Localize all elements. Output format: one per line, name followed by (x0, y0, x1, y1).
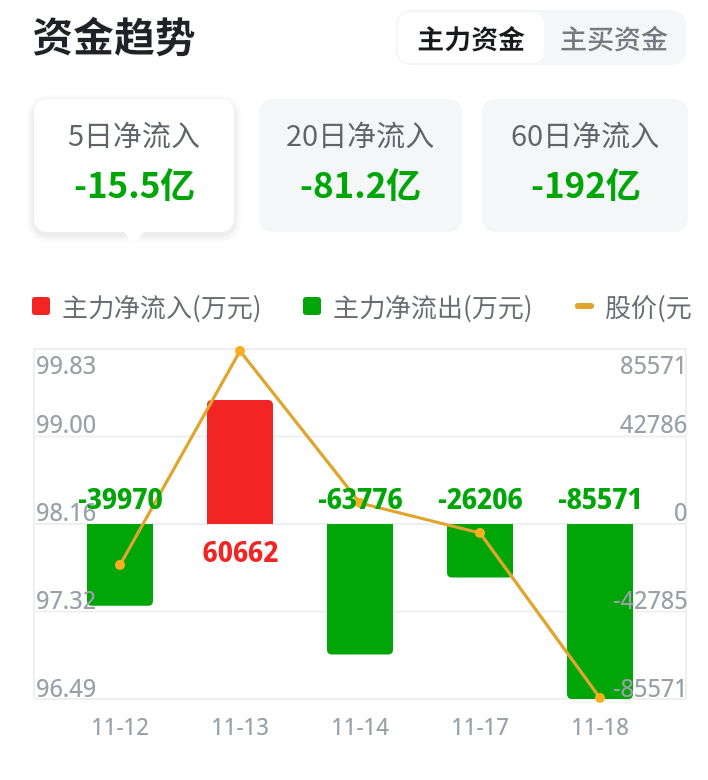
staticText: 98.16 (36, 494, 97, 528)
button[interactable]: 20日净流入 (259, 99, 462, 232)
staticText: 5日净流入 (68, 112, 201, 154)
button[interactable]: 5日净流入 (34, 99, 234, 244)
staticText: -85571 (613, 670, 688, 704)
staticText: 11-18 (571, 710, 629, 742)
staticText: 11-12 (91, 710, 149, 742)
staticText: 11-14 (331, 710, 389, 742)
staticText: 85571 (620, 347, 688, 381)
button[interactable]: 60日净流入 (482, 99, 688, 232)
staticText: 20日净流入 (286, 112, 435, 154)
staticText: 96.49 (36, 670, 97, 704)
staticText: -15.5亿 (74, 157, 196, 208)
button[interactable]: 股价(元 (575, 287, 692, 325)
button[interactable]: 主力资金 (398, 12, 544, 63)
staticText: -85571 (558, 479, 643, 517)
staticText: 0 (674, 494, 688, 528)
button[interactable]: 主力净流入(万元) (32, 287, 262, 325)
button[interactable]: 主力净流出(万元) (303, 287, 533, 325)
staticText: 主力净流出(万元) (333, 287, 533, 325)
staticText: -26206 (438, 479, 523, 517)
staticText: 主力净流入(万元) (62, 287, 262, 325)
staticText: -42785 (613, 582, 688, 616)
staticText: 主买资金 (560, 18, 668, 57)
staticText: -39970 (78, 479, 163, 517)
staticText: 99.00 (36, 406, 97, 440)
staticText: -192亿 (531, 157, 641, 208)
staticText: 99.83 (36, 347, 97, 381)
staticText: 60日净流入 (511, 112, 660, 154)
staticText: 资金趋势 (32, 4, 196, 63)
staticText: 11-17 (451, 710, 509, 742)
staticText: 42786 (620, 406, 688, 440)
staticText: 股价(元 (605, 287, 692, 325)
staticText: -81.2亿 (300, 157, 422, 208)
staticText: 60662 (202, 532, 279, 570)
staticText: 主力资金 (417, 18, 525, 57)
button[interactable]: 主买资金 (544, 12, 684, 63)
staticText: -63776 (318, 479, 403, 517)
staticText: 97.32 (36, 582, 97, 616)
staticText: 11-13 (211, 710, 269, 742)
